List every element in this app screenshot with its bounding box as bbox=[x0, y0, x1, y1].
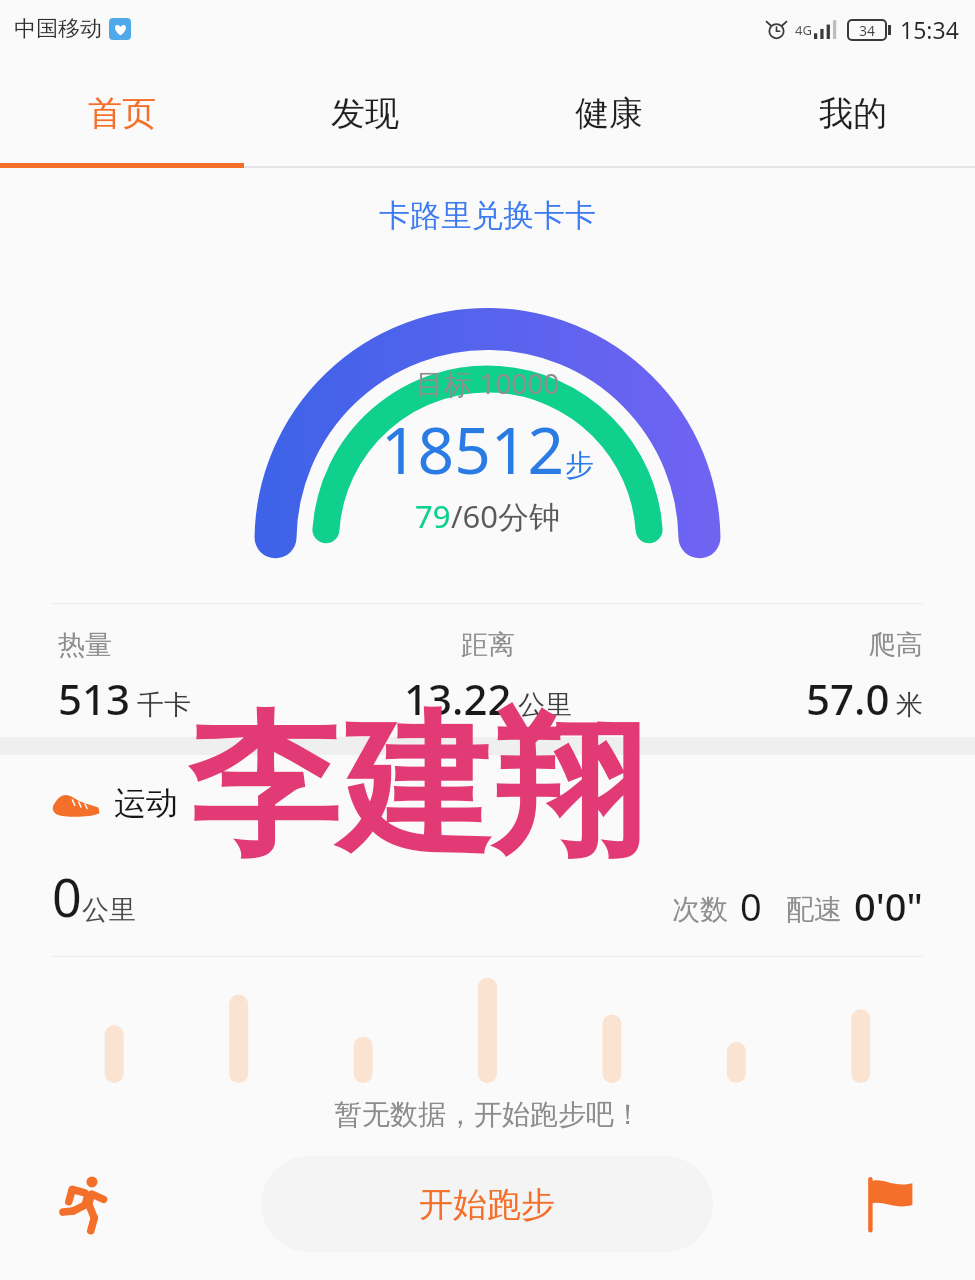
staticText: 距离 bbox=[461, 628, 515, 662]
staticText: 配速 bbox=[786, 892, 842, 927]
staticText: 公里 bbox=[82, 893, 136, 927]
button[interactable]: 距离 bbox=[325, 628, 650, 727]
button[interactable]: Running activity bbox=[42, 1161, 128, 1247]
button[interactable]: Set goal flag bbox=[847, 1161, 933, 1247]
staticText: 爬高 bbox=[869, 628, 923, 662]
staticText: 0 bbox=[740, 880, 762, 932]
staticText: 热量 bbox=[58, 628, 112, 662]
staticText: 发现 bbox=[331, 92, 399, 135]
staticText: 79 bbox=[415, 495, 451, 537]
staticText: 4G bbox=[795, 21, 812, 39]
staticText: 34 bbox=[859, 21, 876, 39]
button[interactable]: 开始跑步 bbox=[261, 1156, 713, 1252]
staticText: 公里 bbox=[518, 688, 572, 722]
button[interactable]: 发现 bbox=[243, 58, 487, 168]
staticText: 13.22 bbox=[404, 670, 512, 727]
staticText: 千卡 bbox=[137, 688, 191, 722]
staticText: 513 bbox=[58, 670, 131, 727]
staticText: 健康 bbox=[575, 92, 643, 135]
staticText: 0'0" bbox=[854, 880, 923, 932]
staticText: 我的 bbox=[819, 92, 887, 135]
button[interactable]: 首页 bbox=[0, 58, 243, 168]
staticText: 中国移动 bbox=[14, 15, 102, 43]
staticText: /60分钟 bbox=[451, 495, 560, 537]
staticText: 目标 10000 bbox=[416, 364, 560, 402]
staticText: 次数 bbox=[672, 892, 728, 927]
button[interactable]: 爬高 bbox=[650, 628, 975, 727]
button[interactable]: 我的 bbox=[731, 58, 975, 168]
staticText: 开始跑步 bbox=[419, 1183, 555, 1226]
button[interactable]: 卡路里兑换卡卡 bbox=[379, 196, 596, 235]
staticText: 米 bbox=[896, 688, 923, 722]
button[interactable]: 健康 bbox=[487, 58, 731, 168]
staticText: 暂无数据，开始跑步吧！ bbox=[334, 1097, 642, 1132]
staticText: 18512 bbox=[381, 406, 565, 493]
staticText: 57.0 bbox=[806, 670, 890, 727]
button[interactable]: 运动 bbox=[52, 783, 178, 823]
staticText: 15:34 bbox=[900, 14, 959, 45]
button[interactable]: 热量 bbox=[0, 628, 325, 727]
staticText: 步 bbox=[565, 447, 594, 484]
staticText: 0 bbox=[52, 861, 82, 932]
staticText: 运动 bbox=[114, 783, 178, 823]
staticText: 卡路里兑换卡卡 bbox=[379, 196, 596, 235]
staticText: 首页 bbox=[88, 92, 156, 135]
staticText: 李建翔 bbox=[188, 692, 644, 883]
